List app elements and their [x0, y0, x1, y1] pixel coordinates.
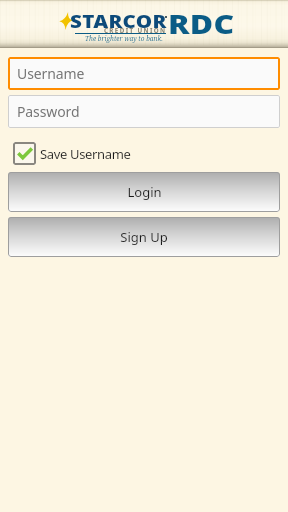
staticText: RDC: [168, 6, 235, 41]
button[interactable]: Username: [8, 57, 280, 90]
staticText: Save Username: [40, 145, 131, 163]
staticText: Username: [17, 64, 85, 83]
other: Save username checkbox, checked: [13, 142, 36, 165]
staticText: Login: [127, 183, 162, 201]
staticText: STARCOR: [70, 9, 167, 33]
staticText: Sign Up: [120, 228, 168, 246]
staticText: Password: [17, 102, 80, 121]
staticText: The brighter way to bank.: [85, 34, 163, 43]
button[interactable]: Password: [8, 95, 280, 128]
button[interactable]: Login: [8, 172, 280, 212]
button[interactable]: Save username checkbox, checked: [13, 142, 131, 165]
button[interactable]: Sign Up: [8, 217, 280, 257]
staticText: CREDIT UNION: [104, 26, 167, 34]
